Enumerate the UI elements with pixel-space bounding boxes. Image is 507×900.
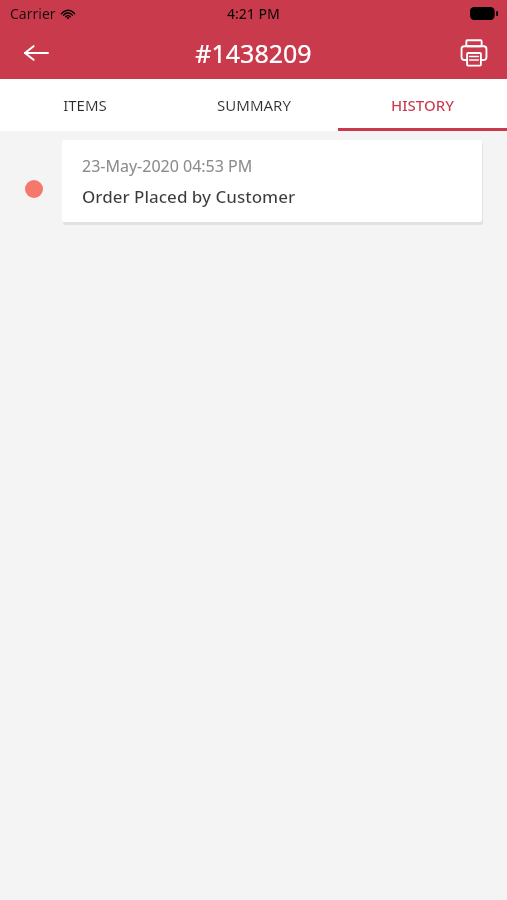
staticText: 4:21 PM xyxy=(227,4,280,23)
button[interactable]: SUMMARY xyxy=(169,79,338,131)
staticText: Carrier xyxy=(10,4,56,23)
staticText: SUMMARY xyxy=(217,95,291,115)
staticText: ITEMS xyxy=(63,95,107,115)
button[interactable]: 23-May-2020 04:53 PM xyxy=(62,140,482,222)
button[interactable]: HISTORY xyxy=(338,79,507,131)
staticText: 23-May-2020 04:53 PM xyxy=(82,155,253,177)
button[interactable]: Print xyxy=(451,30,497,76)
staticText: HISTORY xyxy=(391,95,454,115)
button[interactable]: Back xyxy=(12,29,60,77)
staticText: Order Placed by Customer xyxy=(82,185,296,208)
staticText: #1438209 xyxy=(195,36,312,70)
button[interactable]: ITEMS xyxy=(0,79,169,131)
